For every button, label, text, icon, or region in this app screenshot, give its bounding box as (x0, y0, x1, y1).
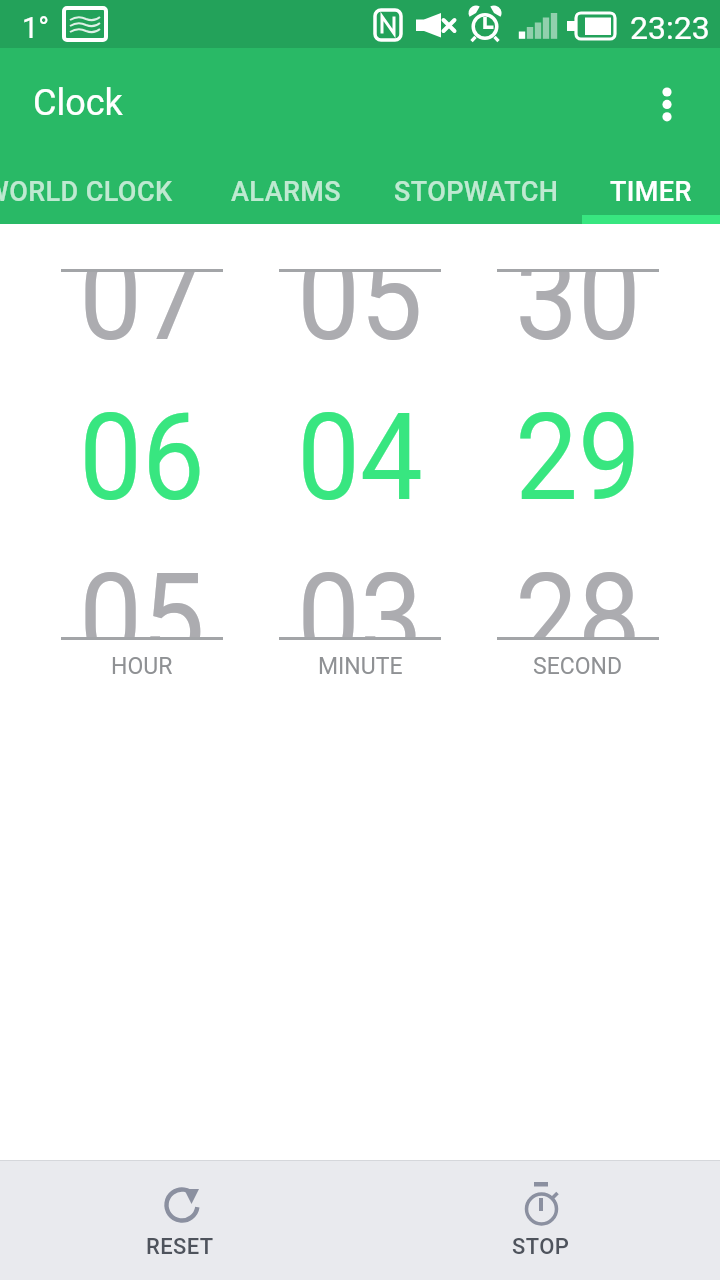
staticText: HOUR (111, 653, 173, 680)
staticText: RESET (146, 1234, 214, 1260)
staticText: ALARMS (231, 176, 342, 208)
staticText: WORLD CLOCK (0, 176, 173, 208)
button[interactable] (110, 1166, 250, 1274)
staticText: TIMER (610, 176, 692, 208)
staticText: STOP (512, 1234, 570, 1260)
staticText: 23:23 (630, 9, 710, 47)
button[interactable]: WORLD CLOCK (0, 164, 199, 219)
staticText: STOPWATCH (394, 176, 559, 208)
button[interactable] (470, 1166, 610, 1274)
staticText: Clock (33, 82, 123, 124)
staticText: MINUTE (318, 653, 403, 680)
button[interactable]: ALARMS (176, 164, 396, 219)
button[interactable]: STOPWATCH (366, 164, 586, 219)
button[interactable] (640, 76, 694, 132)
button[interactable]: TIMER (582, 164, 720, 219)
staticText: SECOND (533, 653, 623, 680)
staticText: 1° (22, 11, 50, 45)
